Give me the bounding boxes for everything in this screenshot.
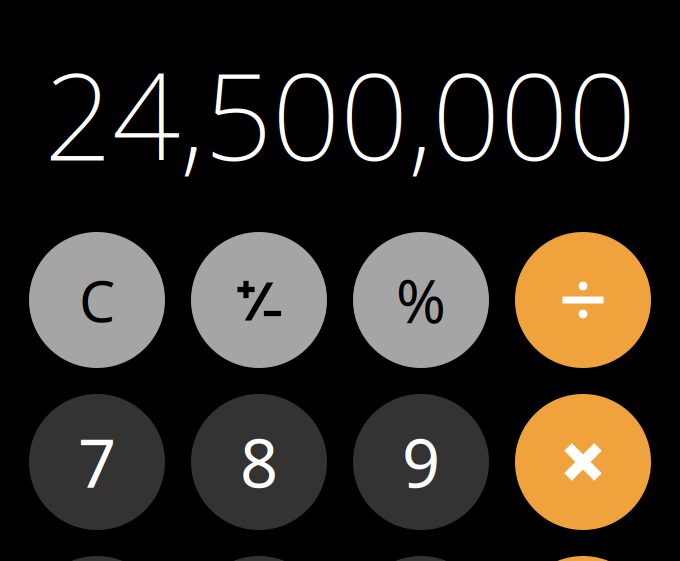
- staticText: C: [79, 262, 115, 338]
- button[interactable]: 6: [353, 556, 489, 561]
- button[interactable]: Divide: [515, 232, 651, 368]
- staticText: 7: [78, 418, 116, 506]
- button[interactable]: %: [353, 232, 489, 368]
- button[interactable]: 7: [29, 394, 165, 530]
- staticText: 9: [402, 418, 440, 506]
- staticText: %: [396, 260, 446, 340]
- staticText: 24,500,000: [44, 34, 636, 194]
- button[interactable]: 8: [191, 394, 327, 530]
- button[interactable]: 4: [29, 556, 165, 561]
- button[interactable]: 9: [353, 394, 489, 530]
- button[interactable]: Subtract: [515, 556, 651, 561]
- button[interactable]: Plus Minus: [191, 232, 327, 368]
- button[interactable]: Multiply: [515, 394, 651, 530]
- button[interactable]: C: [29, 232, 165, 368]
- button[interactable]: 5: [191, 556, 327, 561]
- staticText: 8: [240, 418, 278, 506]
